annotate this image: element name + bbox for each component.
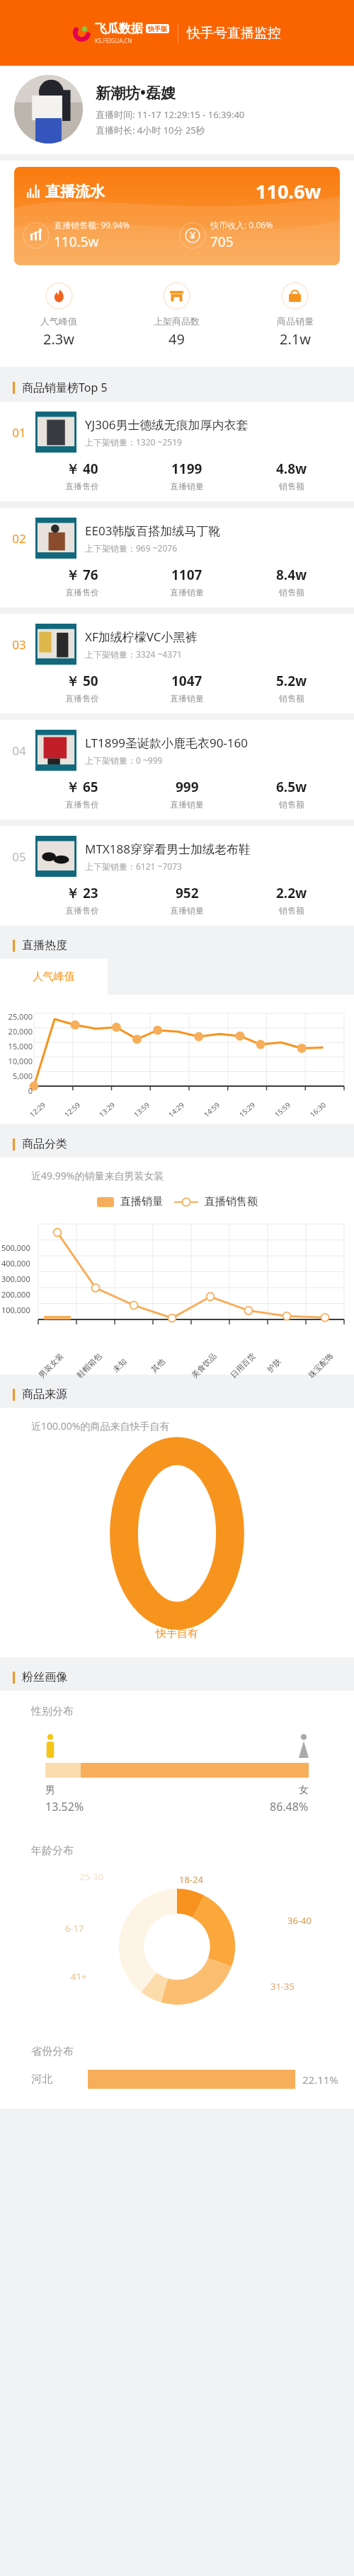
staticText: 上架商品数 (154, 315, 200, 327)
staticText: 400,000 (1, 1258, 30, 1269)
staticText: 直播售价 (65, 905, 99, 916)
staticText: 商品来源 (22, 1387, 67, 1401)
staticText: 1199 (171, 460, 202, 478)
staticText: 110.6w (256, 178, 321, 204)
staticText: 5.2w (276, 672, 307, 690)
staticText: 直播销量 (170, 799, 204, 810)
staticText: 男装女装 (36, 1351, 65, 1380)
staticText: 5,000 (3, 1071, 33, 1081)
staticText: 15:29 (237, 1100, 257, 1119)
staticText: 直播销量 (120, 1195, 163, 1208)
staticText: 2.2w (276, 884, 307, 902)
staticText: 36-40 (287, 1914, 312, 1927)
staticText: 性别分布 (31, 1705, 74, 1718)
staticText: 直播热度 (22, 938, 67, 952)
staticText: 上下架销量：1320 ~2519 (85, 436, 182, 448)
staticText: 美食饮品 (189, 1351, 218, 1380)
staticText: ￥ 40 (66, 460, 98, 478)
staticText: 直播售价 (65, 799, 99, 810)
staticText: 商品分类 (22, 1137, 67, 1151)
staticText: 03 (7, 636, 31, 653)
staticText: 男 (45, 1784, 55, 1797)
staticText: 25-30 (79, 1870, 103, 1883)
staticText: 10,000 (3, 1056, 33, 1066)
button[interactable]: 04 (0, 720, 354, 820)
staticText: 女 (299, 1784, 309, 1797)
button[interactable]: 02 (0, 508, 354, 607)
staticText: 上下架销量：6121 ~7073 (85, 861, 182, 872)
staticText: 快手自有 (156, 1627, 198, 1640)
button[interactable]: 03 (0, 614, 354, 713)
staticText: 快手号直播监控 (187, 25, 281, 42)
staticText: 直播流水 (45, 182, 105, 201)
staticText: 快手版 (148, 25, 167, 33)
staticText: 1047 (171, 672, 202, 690)
staticText: 上下架销量：3324 ~4371 (85, 648, 182, 660)
staticText: LT1899圣诞款小鹿毛衣90-160 (85, 735, 249, 751)
staticText: 销售额 (279, 587, 304, 598)
staticText: 快币收入: 0.06% (210, 219, 273, 231)
staticText: 护肤 (265, 1356, 283, 1374)
staticText: 人气峰值 (40, 315, 77, 327)
staticText: 直播售价 (65, 587, 99, 598)
staticText: 12:59 (62, 1100, 82, 1119)
staticText: 近100.00%的商品来自快手自有 (31, 1419, 170, 1433)
button[interactable]: 05 (0, 826, 354, 926)
staticText: ￥ 50 (66, 672, 98, 690)
staticText: 200,000 (1, 1289, 30, 1300)
staticText: 8.4w (276, 566, 307, 584)
staticText: 珠宝配饰 (306, 1351, 335, 1380)
staticText: 705 (210, 233, 234, 251)
staticText: 省份分布 (31, 2045, 74, 2058)
staticText: ￥ 76 (66, 566, 98, 584)
staticText: 02 (7, 530, 31, 547)
staticText: 上下架销量：969 ~2076 (85, 542, 178, 554)
staticText: 4.8w (276, 460, 307, 478)
staticText: 100,000 (1, 1305, 30, 1315)
staticText: 直播销售额 (205, 1195, 258, 1208)
staticText: 952 (176, 884, 199, 902)
staticText: 上下架销量：0 ~999 (85, 754, 163, 766)
staticText: 6-17 (65, 1922, 84, 1935)
staticText: MTX188穿穿看男士加绒老布鞋 (85, 841, 251, 857)
staticText: KS.FEIGUA.CN (95, 37, 132, 45)
staticText: 13:59 (131, 1100, 152, 1119)
staticText: 13.52% (45, 1799, 84, 1814)
staticText: 人气峰值 (33, 970, 75, 984)
staticText: 14:29 (166, 1100, 186, 1119)
staticText: 销售额 (279, 693, 304, 704)
staticText: 其他 (149, 1356, 167, 1374)
staticText: 年龄分布 (31, 1844, 74, 1858)
staticText: EE03韩版百搭加绒马丁靴 (85, 523, 221, 539)
staticText: XF加绒柠檬VC小黑裤 (85, 629, 198, 645)
staticText: 鞋帽箱包 (75, 1351, 104, 1380)
staticText: 04 (7, 742, 31, 759)
staticText: 商品销量榜Top 5 (22, 380, 108, 395)
staticText: 直播售价 (65, 693, 99, 704)
staticText: 直播销售额: 99.94% (54, 219, 130, 231)
staticText: 销售额 (279, 799, 304, 810)
staticText: 0 (3, 1085, 33, 1096)
staticText: YJ306男士德绒无痕加厚内衣套 (85, 416, 249, 433)
staticText: 直播时长: 4小时 10分 25秒 (96, 124, 205, 136)
staticText: 直播销量 (170, 693, 204, 704)
staticText: 18-24 (179, 1873, 203, 1886)
staticText: 销售额 (279, 905, 304, 916)
staticText: 31-35 (270, 1980, 295, 1993)
staticText: 16:30 (308, 1100, 328, 1119)
staticText: 14:59 (202, 1100, 222, 1119)
button[interactable]: 01 (0, 402, 354, 501)
staticText: 110.5w (54, 233, 99, 251)
staticText: 86.48% (270, 1799, 309, 1814)
staticText: 999 (176, 778, 199, 796)
staticText: 未知 (111, 1356, 129, 1374)
staticText: 41+ (71, 1970, 87, 1983)
staticText: 500,000 (1, 1242, 30, 1253)
staticText: 15:59 (272, 1100, 293, 1119)
staticText: 1107 (171, 566, 202, 584)
staticText: ￥ 65 (66, 778, 98, 796)
staticText: ￥ 23 (66, 884, 98, 902)
button[interactable]: 人气峰值 (0, 959, 108, 995)
staticText: 商品销量 (277, 315, 314, 327)
staticText: 直播销量 (170, 481, 204, 491)
